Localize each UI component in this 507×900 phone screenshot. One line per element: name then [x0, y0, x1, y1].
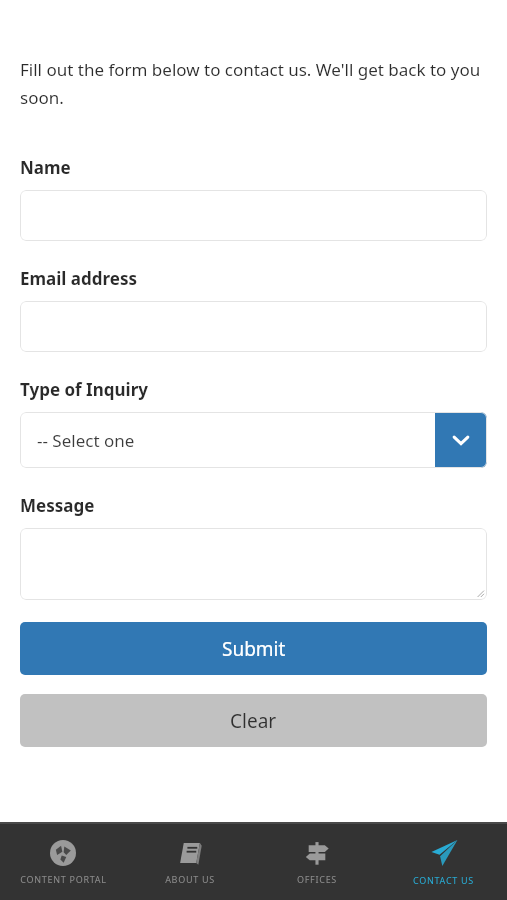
- staticText: Email address: [20, 267, 137, 290]
- button[interactable]: -- Select one: [20, 412, 487, 468]
- staticText: Fill out the form below to contact us. W…: [20, 58, 487, 109]
- staticText: CONTACT US: [413, 874, 474, 886]
- button[interactable]: Open dropdown: [435, 412, 487, 468]
- staticText: OFFICES: [297, 873, 337, 885]
- staticText: Type of Inquiry: [20, 378, 148, 401]
- staticText: Name: [20, 156, 71, 179]
- staticText: ABOUT US: [165, 873, 215, 885]
- staticText: -- Select one: [37, 429, 135, 452]
- staticText: Submit: [222, 636, 286, 662]
- button[interactable]: [20, 190, 487, 241]
- button[interactable]: OFFICES: [253, 824, 380, 900]
- staticText: CONTENT PORTAL: [20, 873, 107, 885]
- button[interactable]: CONTENT PORTAL: [0, 824, 126, 900]
- button[interactable]: [20, 528, 487, 600]
- button[interactable]: [20, 301, 487, 352]
- staticText: Clear: [230, 708, 277, 734]
- button[interactable]: Clear: [20, 694, 487, 747]
- button[interactable]: ABOUT US: [126, 824, 253, 900]
- button[interactable]: Submit: [20, 622, 487, 675]
- staticText: Message: [20, 494, 95, 517]
- button[interactable]: CONTACT US: [380, 824, 507, 900]
